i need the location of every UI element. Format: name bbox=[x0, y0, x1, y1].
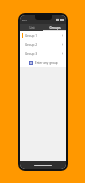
button[interactable]: Group 1 bbox=[20, 31, 66, 40]
button[interactable]: Group 2 bbox=[20, 40, 66, 49]
button[interactable]: Enter any group bbox=[20, 58, 66, 67]
button[interactable]: List bbox=[20, 24, 43, 31]
staticText: Group 3 bbox=[25, 52, 61, 56]
other: Open group bbox=[61, 34, 64, 37]
button[interactable]: Group 3 bbox=[20, 49, 66, 58]
staticText: Group 2 bbox=[25, 43, 61, 47]
staticText: Group 1 bbox=[25, 34, 61, 38]
staticText: 9:41 bbox=[22, 18, 27, 21]
staticText: Groups bbox=[49, 26, 61, 30]
staticText: List bbox=[29, 26, 35, 30]
other: Open group bbox=[61, 43, 64, 46]
other: Open group bbox=[61, 52, 64, 55]
button[interactable]: Groups bbox=[43, 24, 66, 31]
staticText: Enter any group bbox=[35, 61, 58, 65]
